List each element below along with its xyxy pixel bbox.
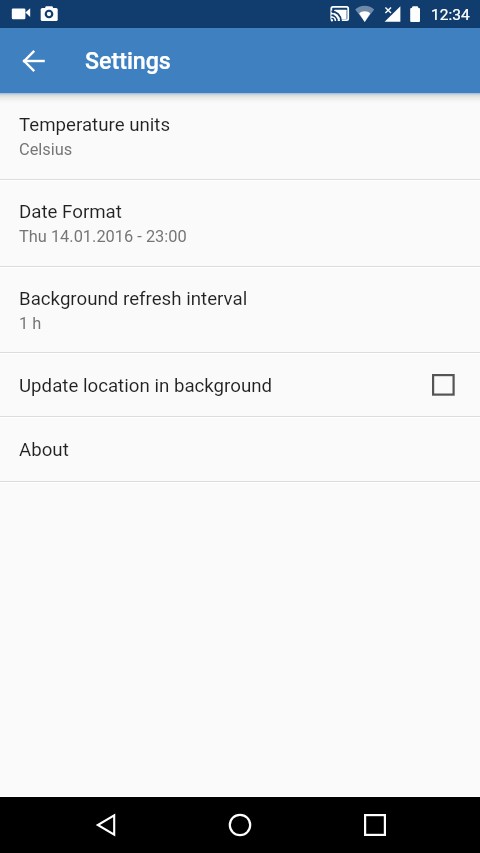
button[interactable]: Navigate up	[10, 37, 58, 85]
button[interactable]: Background refresh interval	[0, 268, 480, 352]
staticText: Celsius	[19, 140, 73, 159]
staticText: 12:34	[431, 6, 470, 24]
button[interactable]: Update location in background	[0, 354, 480, 416]
staticText: 1 h	[19, 314, 42, 333]
button[interactable]: Back	[83, 801, 131, 849]
button[interactable]: About	[0, 418, 480, 481]
staticText: Temperature units	[19, 114, 171, 136]
button[interactable]: Date Format	[0, 181, 480, 266]
staticText: Thu 14.01.2016 - 23:00	[19, 227, 187, 246]
staticText: Update location in background	[19, 375, 432, 397]
staticText: Date Format	[19, 201, 122, 223]
staticText: About	[19, 439, 69, 461]
button[interactable]: Temperature units	[0, 93, 480, 179]
staticText: Settings	[85, 47, 171, 74]
button[interactable]: Recent apps	[351, 801, 399, 849]
button[interactable]: Home	[216, 801, 264, 849]
staticText: Background refresh interval	[19, 288, 248, 310]
